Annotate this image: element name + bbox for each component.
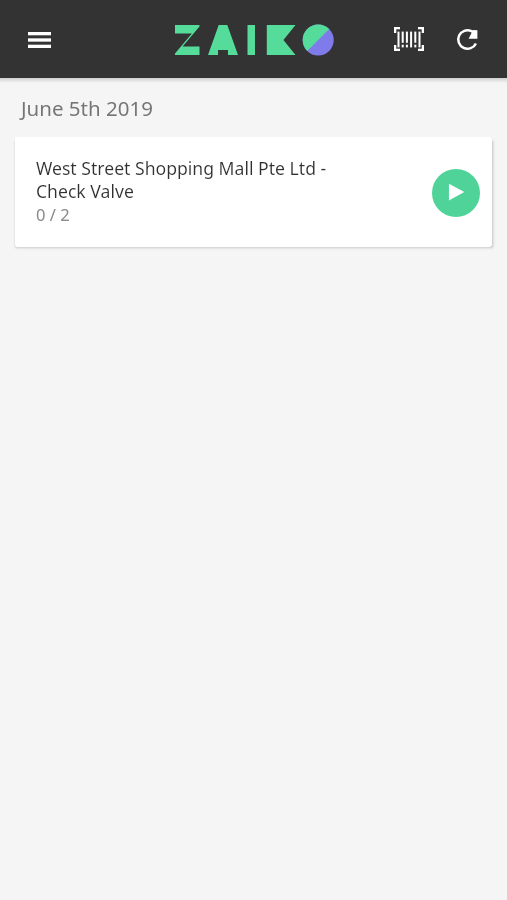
button[interactable]: Menu [11,12,67,68]
staticText: West Street Shopping Mall Pte Ltd - Chec… [36,156,327,203]
button[interactable]: West Street Shopping Mall Pte Ltd - Chec… [15,137,492,245]
button[interactable]: Refresh [444,11,492,67]
staticText: June 5th 2019 [21,94,153,122]
staticText: 0 / 2 [36,203,70,225]
button[interactable]: Scan barcode [382,11,436,67]
button[interactable]: Start [432,169,480,217]
